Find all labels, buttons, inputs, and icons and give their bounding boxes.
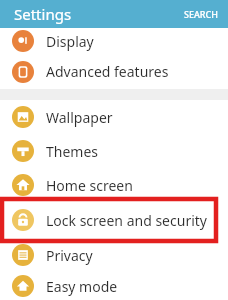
- staticText: Privacy: [46, 246, 93, 265]
- button[interactable]: Privacy: [0, 238, 228, 272]
- staticText: Settings: [14, 4, 72, 24]
- staticText: Wallpaper: [46, 108, 113, 127]
- button[interactable]: SEARCH: [174, 4, 228, 24]
- staticText: Lock screen and security: [46, 211, 207, 230]
- staticText: Easy mode: [46, 277, 118, 296]
- staticText: Home screen: [46, 176, 133, 195]
- staticText: Display: [46, 32, 94, 51]
- button[interactable]: Themes: [0, 134, 228, 168]
- button[interactable]: Advanced features: [0, 54, 228, 89]
- button[interactable]: Lock screen and security: [0, 202, 228, 238]
- button[interactable]: Home screen: [0, 168, 228, 202]
- button[interactable]: Display: [0, 28, 228, 54]
- staticText: Advanced features: [46, 62, 169, 81]
- staticText: SEARCH: [184, 8, 218, 20]
- button[interactable]: Easy mode: [0, 272, 228, 300]
- button[interactable]: Wallpaper: [0, 100, 228, 134]
- staticText: Themes: [46, 142, 99, 161]
